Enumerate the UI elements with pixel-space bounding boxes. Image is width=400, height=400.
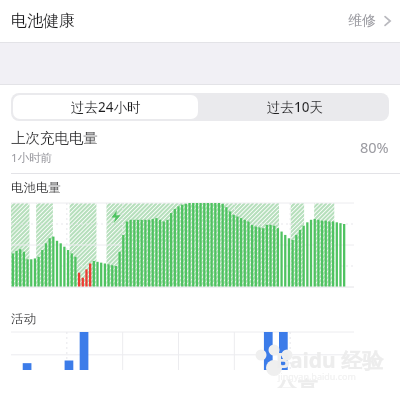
button[interactable]: 过去10天 xyxy=(200,93,389,121)
staticText: 维修 xyxy=(348,12,376,30)
staticText: jingyan.baidu.com xyxy=(278,370,356,382)
staticText: 80% xyxy=(360,137,389,157)
staticText: 过去24小时 xyxy=(71,98,141,116)
staticText: 1小时前 xyxy=(11,150,53,166)
staticText: 过去10天 xyxy=(267,98,323,116)
other: 维修详情 xyxy=(384,15,391,27)
button[interactable]: 上次充电电量 xyxy=(0,121,400,173)
staticText: 上次充电电量 xyxy=(11,129,98,147)
staticText: 电池电量 xyxy=(11,180,61,196)
button[interactable]: 维修 xyxy=(334,5,400,37)
button[interactable]: 过去24小时 xyxy=(11,93,200,121)
staticText: Baidu 经验分享 xyxy=(276,346,396,388)
staticText: 电池健康 xyxy=(11,11,75,31)
staticText: 活动 xyxy=(11,311,36,327)
